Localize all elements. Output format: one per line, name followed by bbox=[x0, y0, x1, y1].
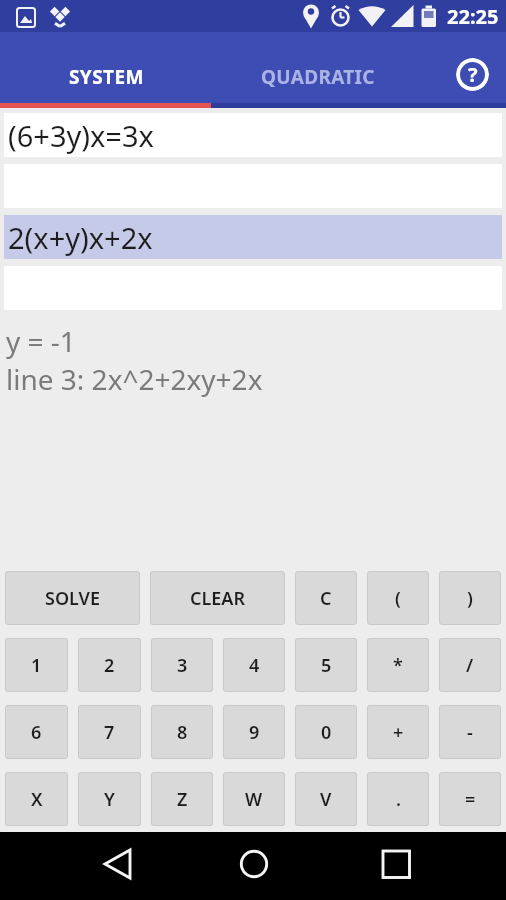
staticText: line 3: 2x^2+2xy+2x bbox=[6, 360, 263, 398]
staticText: Z bbox=[177, 787, 188, 812]
button[interactable]: X bbox=[5, 772, 68, 826]
staticText: ( bbox=[395, 586, 401, 611]
staticText: (6+3y)x=3x bbox=[8, 116, 154, 155]
button[interactable]: Z bbox=[151, 772, 213, 826]
staticText: 1 bbox=[31, 653, 42, 678]
button[interactable]: Y bbox=[78, 772, 141, 826]
button[interactable]: . bbox=[367, 772, 429, 826]
button[interactable]: 0 bbox=[295, 705, 357, 759]
staticText: Y bbox=[104, 787, 115, 812]
button[interactable]: ? bbox=[456, 58, 489, 91]
staticText: C bbox=[320, 586, 332, 611]
button[interactable]: V bbox=[295, 772, 357, 826]
button[interactable] bbox=[0, 832, 168, 900]
button[interactable]: (6+3y)x=3x bbox=[4, 113, 502, 157]
staticText: 0 bbox=[321, 720, 332, 745]
staticText: + bbox=[393, 720, 404, 745]
button[interactable]: 5 bbox=[295, 638, 357, 692]
staticText: . bbox=[396, 787, 401, 812]
staticText: y = -1 bbox=[6, 322, 76, 360]
button[interactable]: CLEAR bbox=[150, 571, 285, 625]
button[interactable]: 6 bbox=[5, 705, 68, 759]
staticText: 5 bbox=[321, 653, 332, 678]
staticText: ? bbox=[468, 61, 478, 88]
button[interactable]: = bbox=[439, 772, 501, 826]
button[interactable]: SYSTEM bbox=[0, 46, 212, 108]
button[interactable]: 9 bbox=[223, 705, 285, 759]
staticText: V bbox=[320, 787, 332, 812]
button[interactable]: + bbox=[367, 705, 429, 759]
staticText: 4 bbox=[249, 653, 260, 678]
button[interactable]: 2 bbox=[78, 638, 141, 692]
button[interactable]: 4 bbox=[223, 638, 285, 692]
button[interactable]: ( bbox=[367, 571, 429, 625]
staticText: 7 bbox=[104, 720, 115, 745]
button[interactable]: * bbox=[367, 638, 429, 692]
button[interactable]: - bbox=[439, 705, 501, 759]
button[interactable]: 2(x+y)x+2x bbox=[4, 215, 502, 259]
button[interactable]: 3 bbox=[151, 638, 213, 692]
button[interactable]: W bbox=[223, 772, 285, 826]
staticText: W bbox=[245, 787, 263, 812]
staticText: * bbox=[393, 653, 403, 678]
staticText: CLEAR bbox=[190, 586, 246, 611]
staticText: 6 bbox=[31, 720, 42, 745]
button[interactable] bbox=[168, 832, 337, 900]
button[interactable]: C bbox=[295, 571, 357, 625]
button[interactable] bbox=[337, 832, 506, 900]
staticText: QUADRATIC bbox=[261, 64, 375, 90]
button[interactable]: / bbox=[439, 638, 501, 692]
button[interactable]: ) bbox=[439, 571, 501, 625]
button[interactable]: SOLVE bbox=[5, 571, 140, 625]
button[interactable]: QUADRATIC bbox=[212, 46, 424, 108]
staticText: / bbox=[466, 653, 474, 678]
staticText: 9 bbox=[249, 720, 260, 745]
staticText: 22:25 bbox=[447, 3, 499, 30]
staticText: SOLVE bbox=[45, 586, 100, 611]
staticText: SYSTEM bbox=[69, 64, 144, 90]
staticText: - bbox=[467, 720, 473, 745]
staticText: X bbox=[31, 787, 43, 812]
button[interactable]: 8 bbox=[151, 705, 213, 759]
staticText: = bbox=[465, 787, 476, 812]
button[interactable]: 1 bbox=[5, 638, 68, 692]
button[interactable]: 7 bbox=[78, 705, 141, 759]
staticText: 3 bbox=[177, 653, 188, 678]
staticText: 2(x+y)x+2x bbox=[8, 218, 153, 257]
staticText: 2 bbox=[104, 653, 115, 678]
staticText: 8 bbox=[177, 720, 188, 745]
staticText: ) bbox=[467, 586, 473, 611]
